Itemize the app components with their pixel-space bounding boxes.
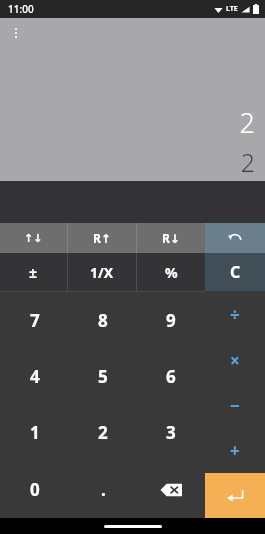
button[interactable]: 5 (69, 348, 137, 404)
button[interactable]: ↑↓ (0, 223, 67, 253)
staticText: % (165, 263, 178, 282)
button[interactable]: 8 (69, 292, 137, 348)
button[interactable]: 6 (137, 348, 205, 404)
button[interactable]: . (69, 461, 137, 518)
staticText: LTE (226, 4, 238, 14)
staticText: 9 (166, 309, 176, 332)
staticText: × (230, 349, 240, 372)
staticText: 1 (30, 421, 40, 444)
staticText: 2 (239, 104, 255, 141)
staticText: 0 (30, 478, 40, 501)
staticText: ÷ (230, 303, 240, 326)
button[interactable]: × (205, 337, 265, 383)
button[interactable]: 7 (0, 292, 69, 348)
staticText: 1/X (90, 263, 114, 282)
button[interactable]: 1 (0, 404, 69, 461)
staticText: 6 (166, 365, 176, 388)
button[interactable]: 3 (137, 404, 205, 461)
staticText: 5 (98, 365, 108, 388)
staticText: 7 (30, 309, 40, 332)
staticText: 3 (166, 421, 176, 444)
button[interactable]: ± (0, 253, 67, 291)
button[interactable]: More options (6, 23, 26, 43)
button[interactable]: − (205, 383, 265, 428)
staticText: 2 (98, 421, 108, 444)
button[interactable]: R↑ (68, 223, 136, 253)
staticText: ↑↓ (24, 232, 43, 245)
button[interactable]: Undo (205, 223, 265, 253)
button[interactable]: Backspace (137, 461, 205, 518)
button[interactable]: ÷ (205, 291, 265, 337)
button[interactable]: % (137, 253, 205, 291)
staticText: R↑ (93, 230, 111, 246)
staticText: ± (29, 263, 38, 282)
staticText: R↓ (162, 230, 180, 246)
staticText: 4 (30, 365, 40, 388)
staticText: C (230, 261, 241, 283)
button[interactable]: C (205, 253, 265, 291)
button[interactable]: Equals (205, 473, 265, 518)
staticText: 11:00 (8, 2, 34, 16)
staticText: − (230, 394, 240, 417)
button[interactable]: 4 (0, 348, 69, 404)
button[interactable]: 1/X (68, 253, 136, 291)
button[interactable]: + (205, 428, 265, 473)
staticText: . (101, 478, 106, 501)
staticText: + (230, 439, 240, 462)
staticText: 8 (98, 309, 108, 332)
button[interactable]: R↓ (137, 223, 205, 253)
staticText: 2 (240, 145, 255, 179)
button[interactable]: 9 (137, 292, 205, 348)
button[interactable]: 2 (69, 404, 137, 461)
button[interactable]: 0 (0, 461, 69, 518)
